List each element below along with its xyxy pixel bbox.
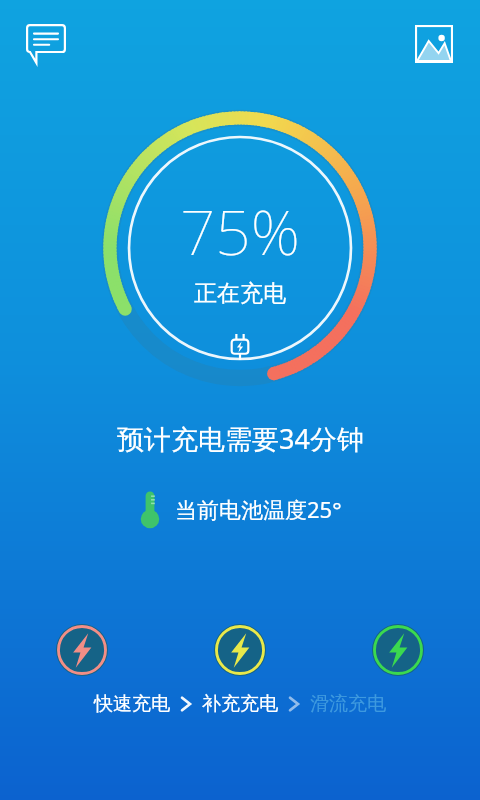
button[interactable]: 滑流充电 xyxy=(308,692,388,716)
button[interactable]: Charging mode xyxy=(214,624,266,676)
button[interactable]: Gallery xyxy=(410,20,458,68)
staticText: 滑流充电 xyxy=(310,692,386,716)
staticText: 当前电池温度25° xyxy=(175,494,342,524)
button[interactable]: Feedback xyxy=(22,20,70,68)
staticText: 预计充电需要34分钟 xyxy=(117,420,364,457)
staticText: 75% xyxy=(180,189,300,273)
button[interactable]: Charging mode xyxy=(56,624,108,676)
staticText: 补充充电 xyxy=(202,692,278,716)
staticText: 快速充电 xyxy=(94,692,170,716)
button[interactable]: Charging mode xyxy=(372,624,424,676)
button[interactable]: 快速充电 xyxy=(92,692,172,716)
staticText: 正在充电 xyxy=(194,279,286,308)
button[interactable]: 补充充电 xyxy=(200,692,280,716)
